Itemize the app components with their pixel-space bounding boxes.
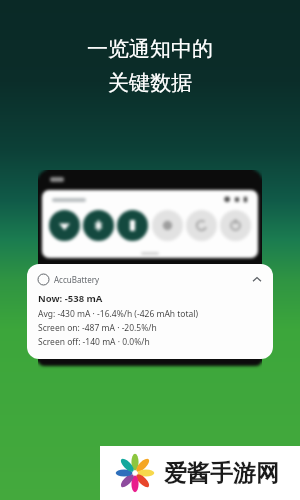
staticText: 一览通知中的 bbox=[87, 36, 213, 62]
button[interactable]: AccuBattery bbox=[27, 264, 273, 359]
staticText: 爱酱手游网 bbox=[164, 459, 279, 488]
button[interactable]: Quick setting 1 bbox=[49, 210, 80, 241]
staticText: AccuBattery bbox=[54, 274, 100, 285]
staticText: 关键数据 bbox=[108, 70, 192, 96]
button[interactable]: Quick setting 4 bbox=[152, 210, 183, 241]
staticText: Avg: -430 mA · -16.4%/h (-426 mAh total) bbox=[38, 308, 199, 320]
staticText: Screen off: -140 mA · 0.0%/h bbox=[38, 336, 150, 348]
button[interactable]: Quick setting 3 bbox=[117, 210, 148, 241]
button[interactable]: Collapse bbox=[250, 272, 264, 286]
staticText: Now: -538 mA bbox=[38, 292, 103, 305]
button[interactable]: Quick setting 5 bbox=[186, 210, 217, 241]
button[interactable]: Quick setting 6 bbox=[220, 210, 251, 241]
button[interactable]: Quick setting 2 bbox=[83, 210, 114, 241]
staticText: Screen on: -487 mA · -20.5%/h bbox=[38, 322, 157, 334]
